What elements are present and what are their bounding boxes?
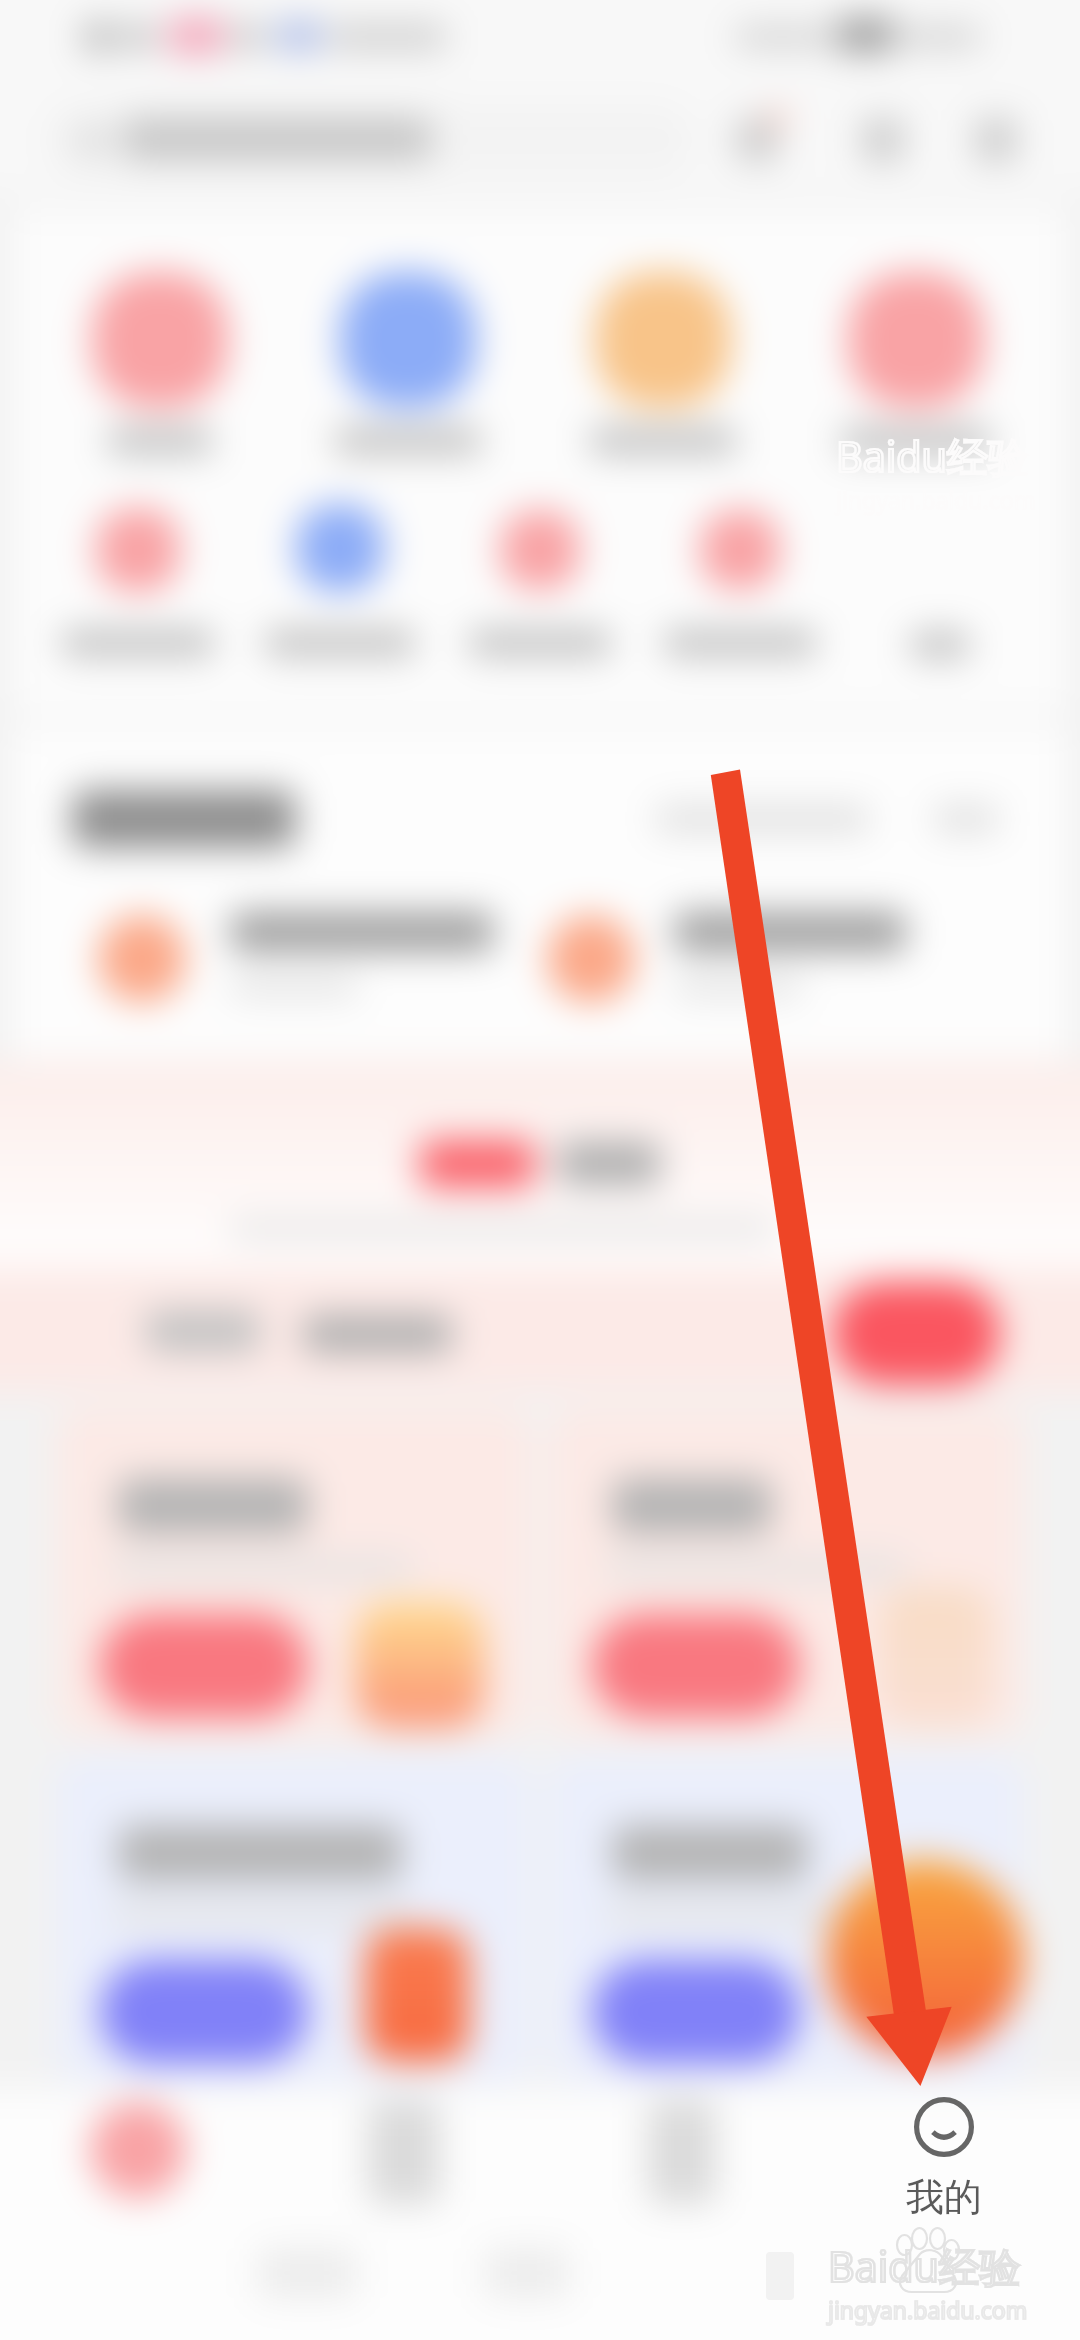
button[interactable]: Home [0, 0, 96, 96]
button[interactable] [46, 104, 696, 176]
button[interactable]: Shortcut [60, 260, 260, 460]
button[interactable]: Promotion [548, 1756, 1024, 2082]
staticText: jingyan.baidu.com [828, 2294, 1028, 2325]
button[interactable]: Shortcut [308, 260, 508, 460]
button[interactable]: 我的 [884, 2097, 1004, 2221]
staticText: 我的 [906, 2173, 982, 2221]
button[interactable]: Shortcut [650, 494, 830, 674]
staticText: Baidu经验 [836, 428, 1029, 484]
button[interactable]: Scan [849, 104, 917, 172]
button[interactable]: Shortcut [816, 260, 1016, 460]
button[interactable]: Promotion [56, 1756, 532, 2082]
button[interactable]: More [962, 104, 1030, 172]
button[interactable]: Shortcut [250, 494, 430, 674]
button[interactable]: Shortcut [450, 494, 630, 674]
button[interactable]: News [545, 900, 867, 1020]
button[interactable]: Shortcut [850, 494, 1030, 674]
staticText: Baidu经验 [828, 2238, 1021, 2294]
button[interactable]: Promotion [548, 1408, 1024, 1736]
button[interactable]: Messages [723, 104, 791, 172]
button[interactable]: Promotion [56, 1408, 532, 1736]
button[interactable]: Shortcut [48, 494, 228, 674]
button[interactable]: News [96, 900, 450, 1020]
button[interactable]: Shortcut [563, 260, 763, 460]
